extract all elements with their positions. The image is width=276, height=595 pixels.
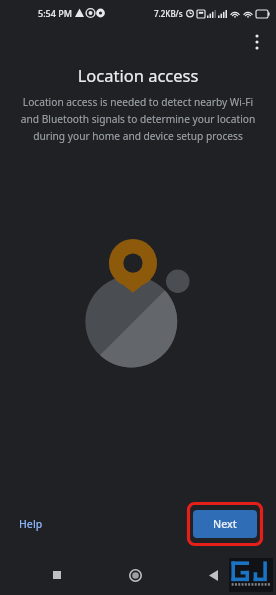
staticText: Next (213, 517, 237, 531)
button[interactable]: Home (118, 558, 152, 592)
staticText: Location access (0, 64, 276, 86)
staticText: 7.2KB/s (154, 8, 183, 19)
staticText: 5:54 PM (38, 7, 72, 19)
staticText: Help (19, 517, 43, 531)
button[interactable]: Back (196, 558, 230, 592)
button[interactable]: Help (12, 511, 50, 537)
staticText: Location access is needed to detect near… (18, 95, 258, 143)
button[interactable]: More options (242, 27, 272, 57)
button[interactable]: Next (193, 510, 257, 538)
button[interactable]: Recents (40, 558, 74, 592)
